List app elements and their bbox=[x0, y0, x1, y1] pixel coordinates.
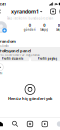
button[interactable]: Profile photo bbox=[0, 20, 7, 33]
staticText: gönderi bbox=[24, 28, 36, 31]
button[interactable]: Profili paylaş bbox=[31, 56, 60, 61]
button[interactable]: Back bbox=[0, 8, 3, 15]
staticText: Takip isteklerini burada göreceksin bbox=[6, 17, 53, 20]
staticText: 09:41 bbox=[0, 1, 6, 7]
button[interactable]: Search bbox=[8, 118, 23, 130]
staticText: Fotoğrafçı bbox=[0, 44, 9, 48]
staticText: xyrandom1 bbox=[11, 8, 39, 15]
button[interactable]: Profili düzenle bbox=[0, 56, 29, 61]
staticText: takipçi bbox=[40, 28, 48, 31]
button[interactable]: New post bbox=[50, 8, 56, 15]
button[interactable]: Profesyonel panel bbox=[0, 47, 60, 58]
staticText: Yeni gösterimler ve daha fazlası bbox=[0, 54, 40, 57]
staticText: 0 bbox=[58, 22, 60, 28]
button[interactable]: xyrandom1 bbox=[11, 8, 42, 15]
staticText: takip bbox=[56, 28, 60, 31]
button[interactable]: Home bbox=[0, 118, 8, 130]
button[interactable]: Menu bbox=[59, 8, 60, 15]
button[interactable]: Yeni bbox=[0, 63, 5, 75]
staticText: xyrandom bbox=[0, 38, 16, 44]
staticText: Yeni bbox=[0, 71, 3, 75]
button[interactable]: Create bbox=[23, 118, 37, 130]
button[interactable]: 0 bbox=[22, 22, 37, 32]
staticText: 0 bbox=[43, 22, 45, 28]
button[interactable]: 0 bbox=[51, 22, 60, 32]
button[interactable]: 0 bbox=[37, 22, 51, 32]
button[interactable]: Profile bbox=[52, 118, 60, 130]
button[interactable]: Reels bbox=[37, 118, 52, 130]
staticText: Henüz hiç gönderi yok bbox=[8, 96, 52, 101]
staticText: Profili paylaş bbox=[38, 57, 57, 60]
staticText: 0 bbox=[29, 22, 31, 28]
staticText: Profesyonel panel bbox=[0, 48, 31, 53]
staticText: Profili düzenle bbox=[2, 57, 24, 60]
